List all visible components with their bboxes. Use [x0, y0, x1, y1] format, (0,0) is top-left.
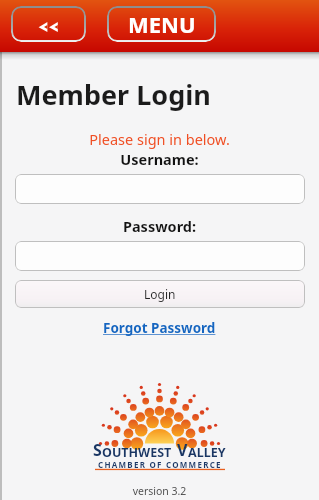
staticText: version 3.2 [0, 484, 319, 498]
staticText: Forgot Password [103, 319, 216, 337]
staticText: MENU [128, 9, 196, 39]
button[interactable]: Back [11, 6, 86, 42]
staticText: CHAMBER OF COMMERCE [98, 459, 222, 470]
staticText: Password: [0, 216, 319, 236]
button[interactable]: Forgot Password [103, 319, 216, 337]
button[interactable]: Login [15, 280, 305, 308]
button[interactable] [15, 241, 305, 271]
staticText: OUTHWEST [102, 444, 172, 461]
button[interactable] [15, 174, 305, 204]
staticText: ALLEY [188, 444, 226, 461]
staticText: V [177, 439, 188, 461]
staticText: Username: [0, 149, 319, 169]
staticText: Login [144, 286, 176, 302]
staticText: Member Login [16, 76, 211, 113]
staticText: Please sign in below. [0, 129, 319, 149]
button[interactable]: MENU [107, 6, 216, 42]
staticText: S [93, 439, 102, 461]
